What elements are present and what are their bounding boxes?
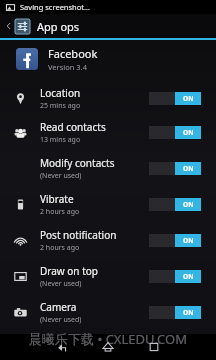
button[interactable]: Back (45, 334, 79, 360)
button[interactable]: Read contacts (0, 114, 216, 150)
button[interactable]: Toggle permission (149, 306, 201, 319)
button[interactable]: Location (0, 82, 216, 114)
staticText: ON (183, 200, 194, 209)
button[interactable]: Toggle permission (149, 234, 201, 247)
button[interactable]: Camera (0, 294, 216, 330)
button[interactable]: Facebook (0, 40, 216, 78)
staticText: Facebook (48, 46, 98, 61)
staticText: 2 hours ago (40, 207, 80, 217)
staticText: ON (183, 128, 194, 137)
staticText: App ops (37, 19, 80, 34)
staticText: (Never used) (40, 315, 82, 325)
button[interactable]: Draw on top (0, 258, 216, 294)
button[interactable]: Vibrate (0, 186, 216, 222)
staticText: Version 3.4 (48, 62, 87, 72)
staticText: ON (183, 164, 194, 173)
staticText: Draw on top (40, 264, 98, 278)
staticText: Read contacts (40, 120, 106, 134)
staticText: 25 mins ago (40, 101, 81, 111)
button[interactable]: Toggle permission (149, 126, 201, 139)
button[interactable]: Back (4, 21, 14, 31)
staticText: (Never used) (40, 171, 82, 181)
button[interactable]: Toggle permission (149, 162, 201, 175)
staticText: ON (183, 272, 194, 281)
staticText: ON (183, 308, 194, 317)
button[interactable]: Modify contacts (0, 150, 216, 186)
button[interactable]: Toggle permission (149, 92, 201, 105)
staticText: Modify contacts (40, 156, 115, 170)
staticText: 晨曦乐下载 • CXLEDU.COM (29, 330, 187, 348)
staticText: Vibrate (40, 192, 74, 206)
staticText: ON (183, 94, 194, 103)
button[interactable]: Toggle permission (149, 270, 201, 283)
button[interactable]: Recents (137, 334, 171, 360)
staticText: Saving screenshot… (20, 2, 90, 12)
staticText: Location (40, 86, 81, 100)
staticText: 13 mins ago (40, 135, 81, 145)
staticText: 2 hours ago (40, 243, 80, 253)
staticText: (Never used) (40, 279, 82, 289)
staticText: Post notification (40, 228, 117, 242)
button[interactable]: Toggle permission (149, 198, 201, 211)
button[interactable]: Post notification (0, 222, 216, 258)
button[interactable]: Back (0, 14, 216, 38)
button[interactable]: Home (91, 334, 125, 360)
staticText: ON (183, 236, 194, 245)
staticText: Camera (40, 300, 77, 314)
